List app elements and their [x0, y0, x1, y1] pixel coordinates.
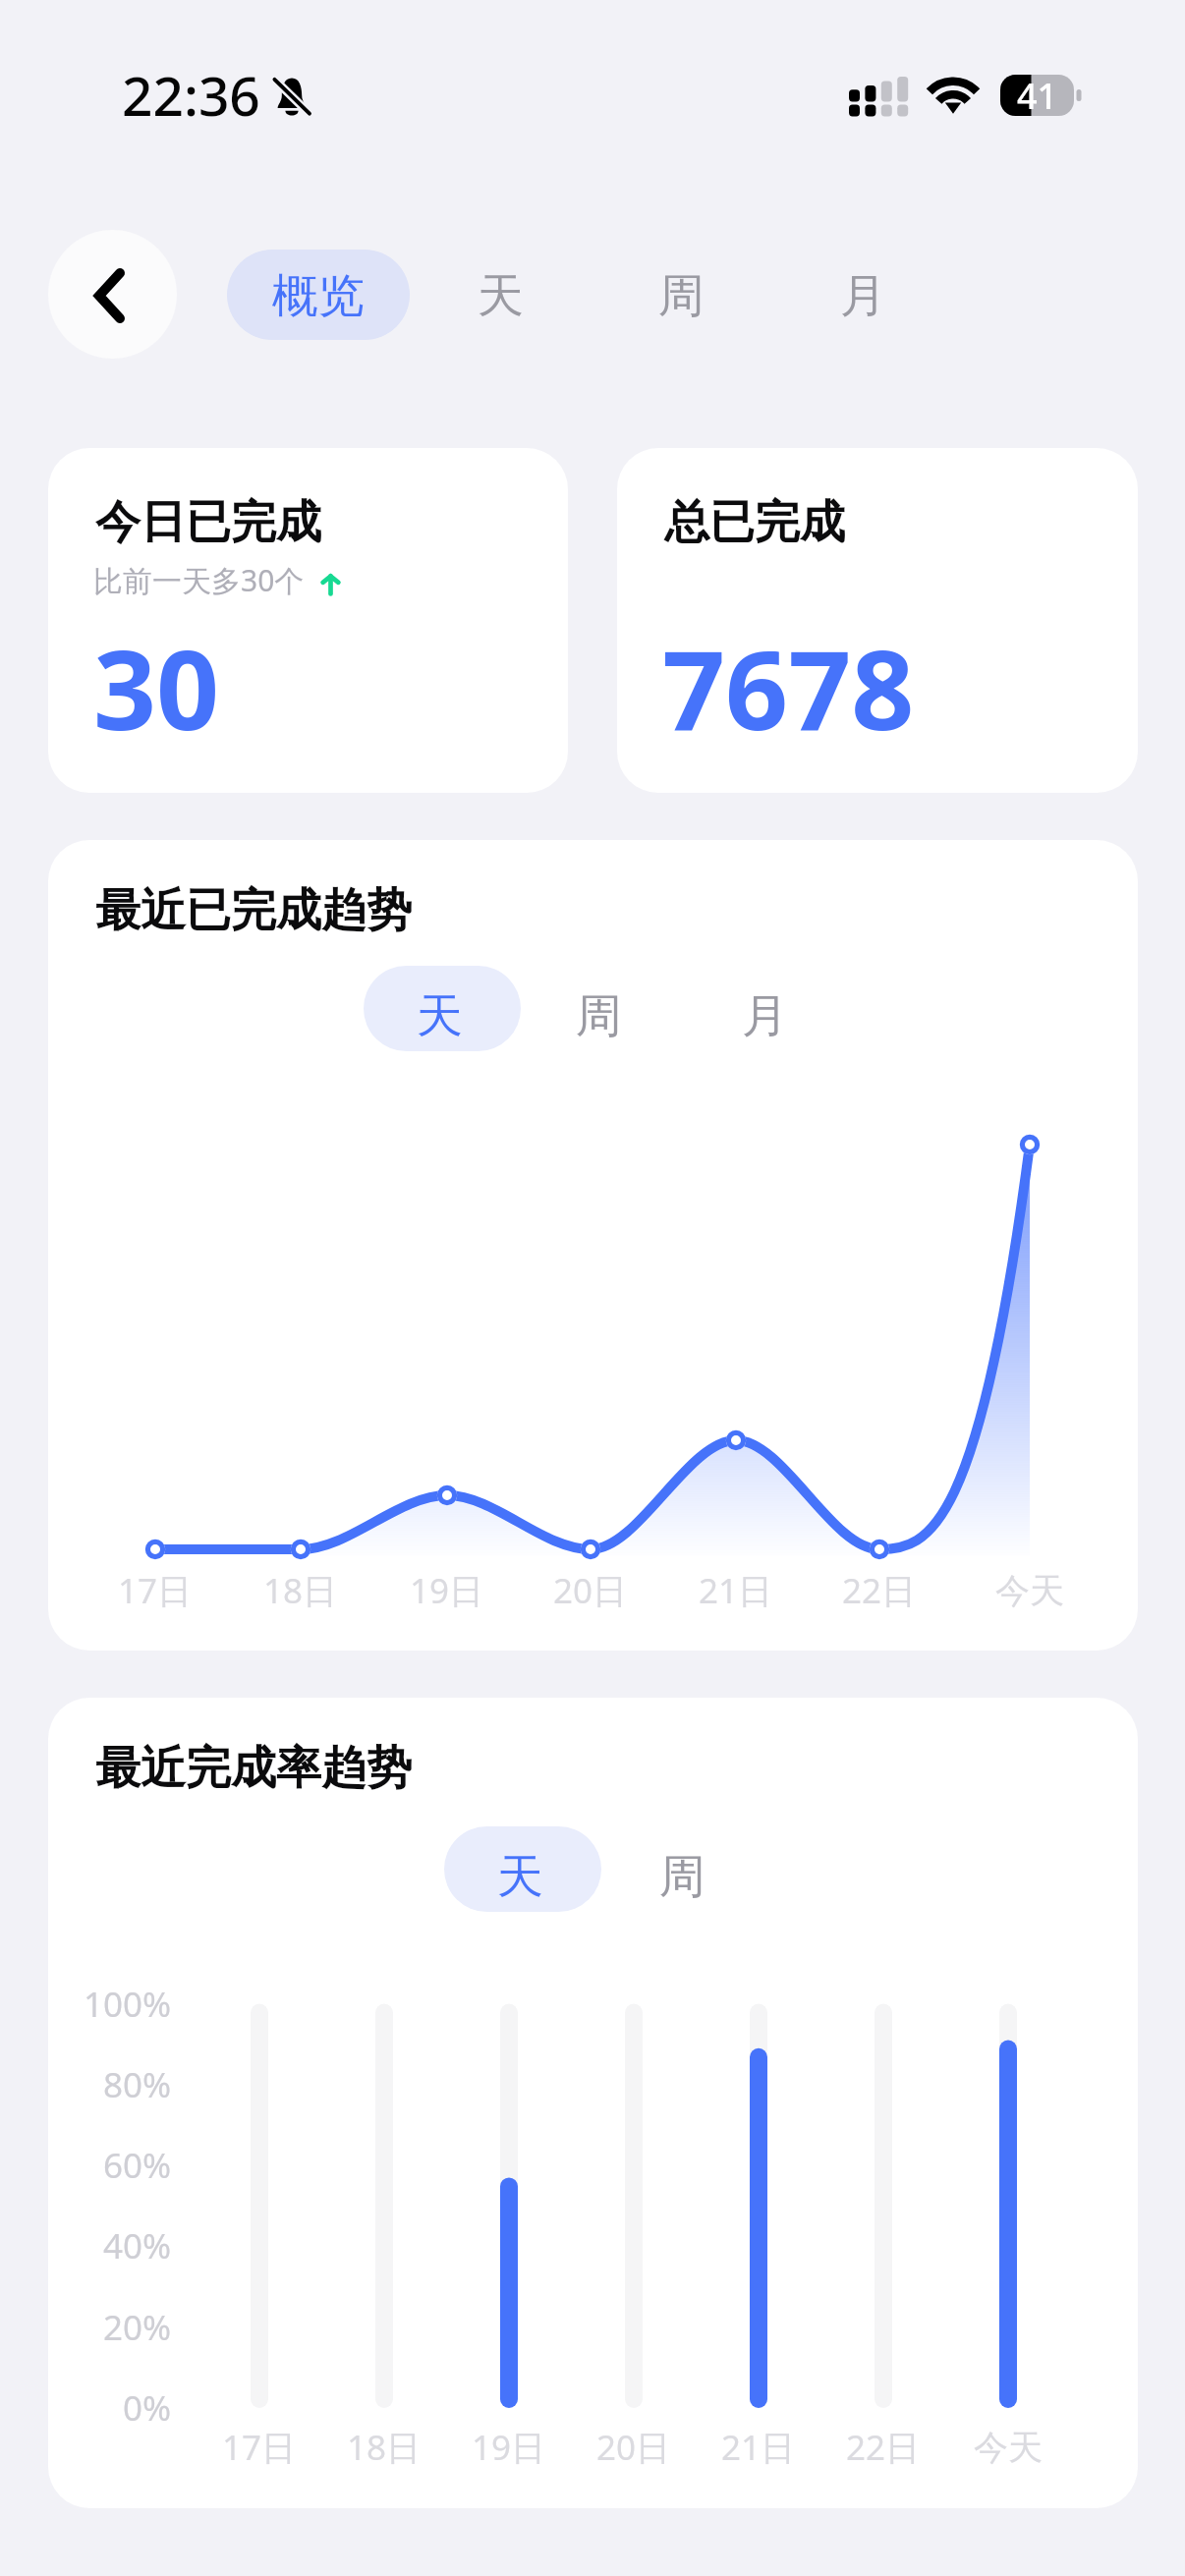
button[interactable]: 总已完成 [617, 448, 1138, 793]
staticText: 20% [103, 2304, 172, 2351]
staticText: 天 [417, 987, 463, 1045]
button[interactable]: 月 [809, 250, 917, 340]
button[interactable]: 概览 [227, 250, 410, 340]
staticText: 今天 [974, 2426, 1043, 2469]
staticText: 最近已完成趋势 [95, 882, 412, 939]
staticText: 月 [742, 987, 788, 1045]
staticText: 17日 [222, 2424, 297, 2471]
staticText: 概览 [272, 267, 365, 325]
staticText: 18日 [263, 1567, 338, 1614]
staticText: 21日 [721, 2424, 796, 2471]
staticText: 今日已完成 [95, 494, 321, 551]
button[interactable]: 今日已完成 [48, 448, 568, 793]
staticText: 天 [478, 267, 524, 325]
staticText: 17日 [118, 1567, 193, 1614]
staticText: 22:36 [122, 58, 260, 132]
button[interactable]: 周 [627, 250, 735, 340]
staticText: 周 [659, 1848, 705, 1906]
staticText: 今天 [995, 1569, 1064, 1612]
staticText: 20日 [596, 2424, 671, 2471]
staticText: 40% [103, 2222, 172, 2269]
staticText: 19日 [472, 2424, 546, 2471]
button[interactable]: 月 [689, 966, 846, 1051]
staticText: 天 [497, 1848, 543, 1906]
staticText: 最近完成率趋势 [95, 1740, 412, 1797]
staticText: 60% [103, 2142, 172, 2189]
staticText: 22日 [846, 2424, 921, 2471]
staticText: 30 [93, 612, 220, 762]
button[interactable]: Back [48, 230, 177, 359]
staticText: 20日 [553, 1567, 628, 1614]
staticText: 80% [103, 2061, 172, 2108]
staticText: 100% [84, 1981, 172, 2028]
staticText: 41 [1017, 72, 1058, 113]
button[interactable]: 周 [523, 966, 680, 1051]
staticText: 7678 [662, 612, 915, 762]
staticText: 总已完成 [664, 494, 845, 551]
staticText: 18日 [347, 2424, 422, 2471]
staticText: 22日 [842, 1567, 917, 1614]
button[interactable]: 周 [606, 1826, 763, 1912]
button[interactable]: 天 [364, 966, 521, 1051]
staticText: 月 [840, 267, 886, 325]
staticText: 0% [123, 2384, 172, 2432]
staticText: 周 [658, 267, 705, 325]
staticText: 19日 [410, 1567, 484, 1614]
button[interactable]: 天 [444, 1826, 601, 1912]
button[interactable]: 天 [446, 250, 554, 340]
staticText: 21日 [699, 1567, 773, 1614]
staticText: 比前一天多30个 [93, 560, 305, 600]
staticText: 周 [576, 987, 622, 1045]
